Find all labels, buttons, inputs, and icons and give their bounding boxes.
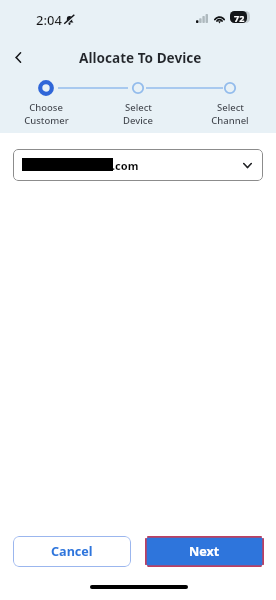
staticText: Allocate To Device (79, 48, 202, 67)
staticText: Next (189, 543, 220, 560)
button[interactable]: Back (5, 44, 31, 70)
staticText: Select (217, 101, 244, 114)
staticText: 72 (234, 12, 245, 24)
staticText: Choose (29, 101, 63, 114)
button[interactable]: Select (184, 66, 276, 127)
staticText: .com (112, 158, 139, 173)
staticText: Device (123, 114, 153, 127)
staticText: Channel (211, 114, 249, 127)
button[interactable]: Select (92, 66, 184, 127)
button[interactable]: Next (145, 536, 264, 567)
staticText: Select (125, 101, 152, 114)
staticText: Customer (24, 114, 69, 127)
staticText: Cancel (51, 543, 93, 560)
staticText: 2:04 (36, 11, 62, 29)
button[interactable]: .com (13, 149, 263, 181)
button[interactable]: Cancel (13, 536, 131, 567)
button[interactable]: Choose (0, 66, 92, 127)
